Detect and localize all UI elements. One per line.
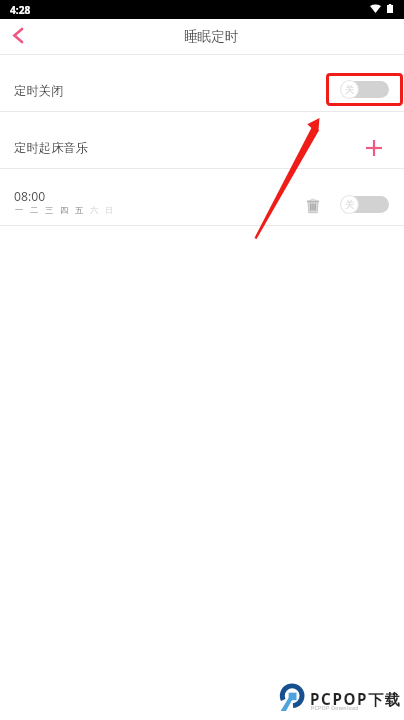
- staticText: 四: [60, 205, 75, 215]
- staticText: 定时关闭: [14, 83, 64, 99]
- button[interactable]: 定时起床音乐: [0, 112, 404, 168]
- staticText: 五: [75, 205, 90, 215]
- staticText: 定时起床音乐: [14, 140, 89, 156]
- button[interactable]: Timer switch, off: [340, 195, 389, 214]
- button[interactable]: Add: [360, 134, 388, 162]
- staticText: PCPOP Download: [311, 704, 359, 711]
- button[interactable]: 08:00: [0, 169, 404, 225]
- staticText: 08:00: [14, 188, 46, 205]
- staticText: 三: [45, 205, 60, 215]
- staticText: 六: [90, 205, 105, 215]
- staticText: 二: [30, 205, 45, 215]
- button[interactable]: Delete: [302, 194, 324, 216]
- staticText: 一: [15, 205, 30, 215]
- staticText: 关: [345, 84, 355, 96]
- button[interactable]: Back: [0, 19, 44, 54]
- staticText: PCPOP下载: [310, 689, 402, 710]
- staticText: 关: [345, 199, 355, 211]
- button[interactable]: 定时关闭: [0, 55, 404, 111]
- staticText: 日: [105, 205, 120, 215]
- staticText: 睡眠定时: [184, 28, 239, 45]
- button[interactable]: Timer switch, off: [340, 80, 389, 99]
- staticText: 4:28: [10, 3, 31, 17]
